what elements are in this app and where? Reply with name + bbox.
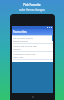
staticText: Pick Favorite — [23, 3, 41, 7]
staticText: Application colour set — [13, 53, 36, 56]
staticText: color theme changes — [19, 8, 45, 12]
staticText: System — [13, 48, 21, 51]
staticText: Favourites — [13, 30, 27, 34]
button[interactable]: Application colour set — [12, 52, 53, 60]
staticText: Light blue — [13, 56, 24, 59]
button[interactable]: Set favorite colours — [12, 36, 53, 44]
staticText: Set favorite colours — [13, 37, 33, 40]
staticText: Default theme — [13, 40, 28, 43]
button[interactable]: Favourites — [12, 29, 53, 35]
staticText: Theme use of your app — [13, 45, 37, 48]
button[interactable]: Theme use of your app — [12, 44, 53, 52]
